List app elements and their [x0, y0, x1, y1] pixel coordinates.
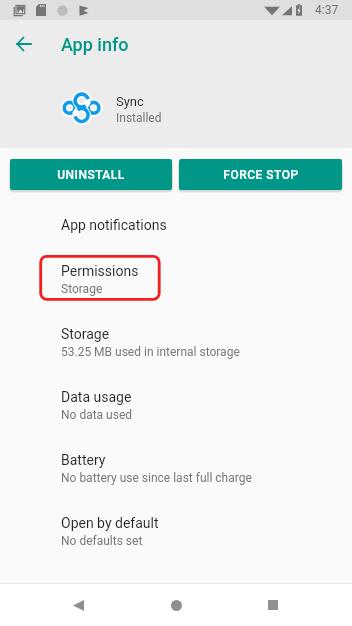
staticText: Data usage [61, 389, 132, 405]
staticText: App info [61, 34, 129, 55]
staticText: FORCE STOP [223, 168, 299, 182]
button[interactable]: Open by default [0, 500, 352, 563]
button[interactable]: App notifications [0, 202, 352, 248]
staticText: Open by default [61, 515, 159, 531]
staticText: No defaults set [61, 534, 143, 548]
staticText: Installed [116, 111, 162, 125]
staticText: UNINSTALL [57, 168, 125, 182]
staticText: Permissions [61, 263, 139, 279]
button[interactable]: FORCE STOP [179, 159, 342, 190]
button[interactable]: Home [154, 584, 198, 626]
staticText: No data used [61, 408, 133, 422]
staticText: Storage [61, 282, 103, 296]
staticText: Battery [61, 452, 106, 468]
staticText: Sync [116, 94, 144, 109]
staticText: App notifications [61, 217, 167, 233]
button[interactable]: Navigate up [8, 28, 40, 60]
button[interactable]: UNINSTALL [10, 159, 172, 190]
staticText: No battery use since last full charge [61, 471, 252, 485]
button[interactable]: Data usage [0, 374, 352, 437]
staticText: Storage [61, 326, 110, 342]
button[interactable]: Back [56, 584, 100, 626]
staticText: 53.25 MB used in internal storage [61, 345, 240, 359]
staticText: 4:37 [315, 3, 339, 17]
button[interactable]: Recent apps [251, 584, 295, 626]
button[interactable]: Battery [0, 437, 352, 500]
button[interactable]: Storage [0, 311, 352, 374]
button[interactable]: Permissions [0, 248, 352, 311]
